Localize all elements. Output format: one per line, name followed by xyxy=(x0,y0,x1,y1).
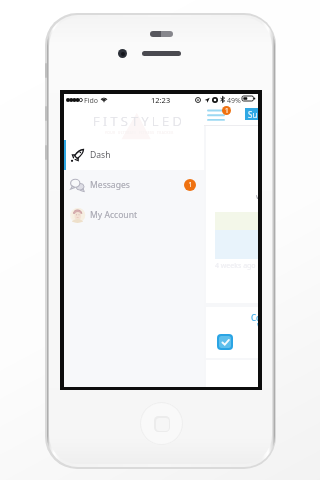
staticText: Co xyxy=(251,312,258,323)
staticText: My Account xyxy=(90,209,138,221)
staticText: 1 xyxy=(225,106,229,115)
staticText: Fido xyxy=(84,96,98,106)
button[interactable]: My Account xyxy=(64,200,204,230)
staticText: 12:23 xyxy=(151,95,171,105)
staticText: FITSTYLED xyxy=(93,112,186,130)
button[interactable]: Dash xyxy=(64,140,204,170)
staticText: 49% xyxy=(227,96,241,106)
button[interactable]: Messages xyxy=(64,170,204,200)
staticText: 1 xyxy=(188,180,193,190)
button[interactable]: Su xyxy=(245,108,258,120)
staticText: YOUR ULTIMATE FITNESS TRACKER xyxy=(105,131,174,135)
staticText: W xyxy=(257,321,258,331)
staticText: Su xyxy=(248,109,258,120)
staticText: 4 weeks ago xyxy=(215,261,256,271)
staticText: w xyxy=(256,192,258,201)
staticText: Dash xyxy=(90,149,111,161)
button[interactable]: Open navigation menu xyxy=(208,109,224,120)
button[interactable]: Completed checkbox xyxy=(217,334,233,350)
staticText: Messages xyxy=(90,179,130,191)
